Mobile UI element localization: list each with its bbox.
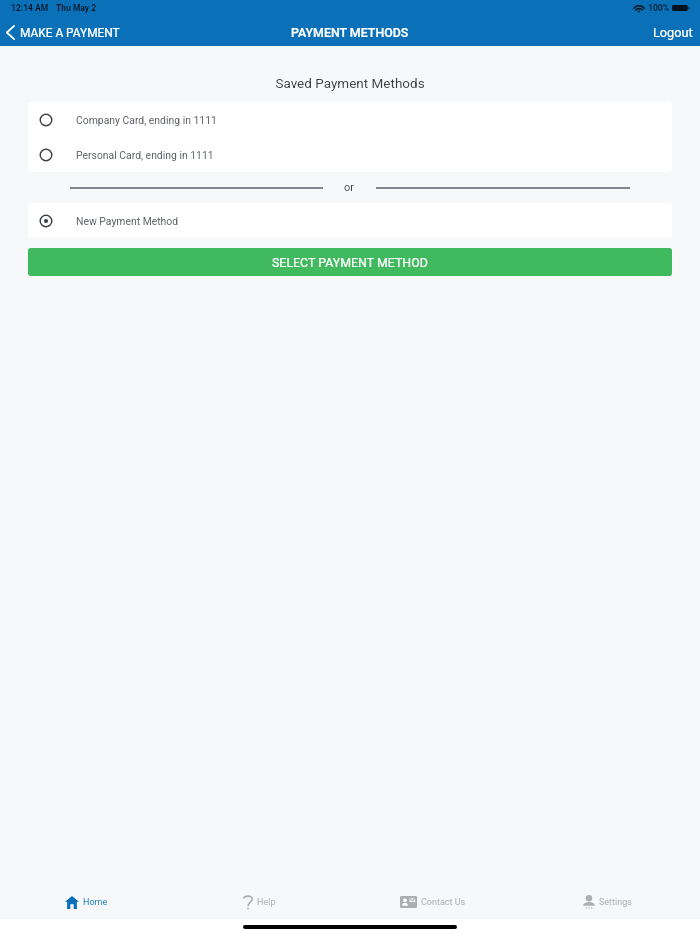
staticText: or <box>344 181 355 194</box>
staticText: Logout <box>653 25 693 40</box>
staticText: PAYMENT METHODS <box>291 25 409 40</box>
staticText: New Payment Method <box>76 215 179 227</box>
button[interactable]: Logout <box>645 21 700 44</box>
button[interactable]: Home <box>0 885 173 919</box>
staticText: Saved Payment Methods <box>0 75 700 91</box>
button[interactable]: Help <box>173 885 346 919</box>
staticText: Contact Us <box>421 897 466 908</box>
button[interactable]: Contact Us <box>346 885 520 919</box>
staticText: MAKE A PAYMENT <box>20 26 120 40</box>
button[interactable]: Company Card, ending in 1111 <box>28 102 672 137</box>
other: Back <box>6 25 15 40</box>
staticText: 100% <box>648 3 669 13</box>
button[interactable]: SELECT PAYMENT METHOD <box>28 248 672 276</box>
staticText: Company Card, ending in 1111 <box>76 114 217 126</box>
staticText: Help <box>257 897 276 908</box>
staticText: 12:14 AM <box>11 3 49 13</box>
button[interactable]: Settings <box>520 885 694 919</box>
staticText: SELECT PAYMENT METHOD <box>272 255 428 270</box>
button[interactable]: New Payment Method <box>28 203 672 238</box>
staticText: Settings <box>599 897 632 908</box>
button[interactable]: Back <box>0 21 126 44</box>
staticText: Home <box>83 897 108 908</box>
button[interactable]: Personal Card, ending in 1111 <box>28 137 672 172</box>
staticText: Thu May 2 <box>56 3 97 13</box>
staticText: Personal Card, ending in 1111 <box>76 149 214 161</box>
